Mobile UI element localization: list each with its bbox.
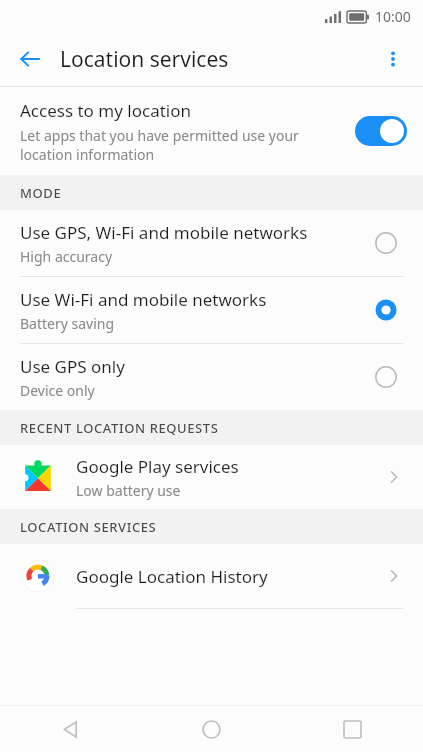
staticText: LOCATION SERVICES [20,518,157,536]
button[interactable]: Access to my location [0,87,423,175]
staticText: Use GPS, Wi-Fi and mobile networks [20,221,308,244]
staticText: Battery saving [20,314,115,333]
staticText: Google Play services [76,455,239,478]
staticText: Use GPS only [20,355,125,378]
staticText: Google Location History [76,565,268,588]
staticText: Low battery use [76,481,181,500]
button[interactable]: Google Play services [0,445,423,509]
staticText: Location services [60,45,229,74]
staticText: High accuracy [20,247,113,266]
button[interactable]: Back [8,37,52,81]
button[interactable]: Use Wi-Fi and mobile networks [0,277,423,343]
staticText: 10:00 [375,7,411,26]
button[interactable]: More options [371,37,415,81]
staticText: Let apps that you have permitted use you… [20,126,343,164]
button[interactable]: Use GPS, Wi-Fi and mobile networks [0,210,423,276]
button[interactable]: Use GPS only [0,344,423,410]
button[interactable]: Home [141,706,282,752]
button[interactable]: Google Location History [0,544,423,608]
staticText: RECENT LOCATION REQUESTS [20,419,219,437]
staticText: Device only [20,381,95,400]
button[interactable]: Back [0,706,141,752]
button[interactable]: Recent apps [282,706,423,752]
staticText: Access to my location [20,99,191,122]
staticText: Use Wi-Fi and mobile networks [20,288,267,311]
button[interactable]: Access to my location toggle [355,116,407,146]
staticText: MODE [20,184,62,202]
